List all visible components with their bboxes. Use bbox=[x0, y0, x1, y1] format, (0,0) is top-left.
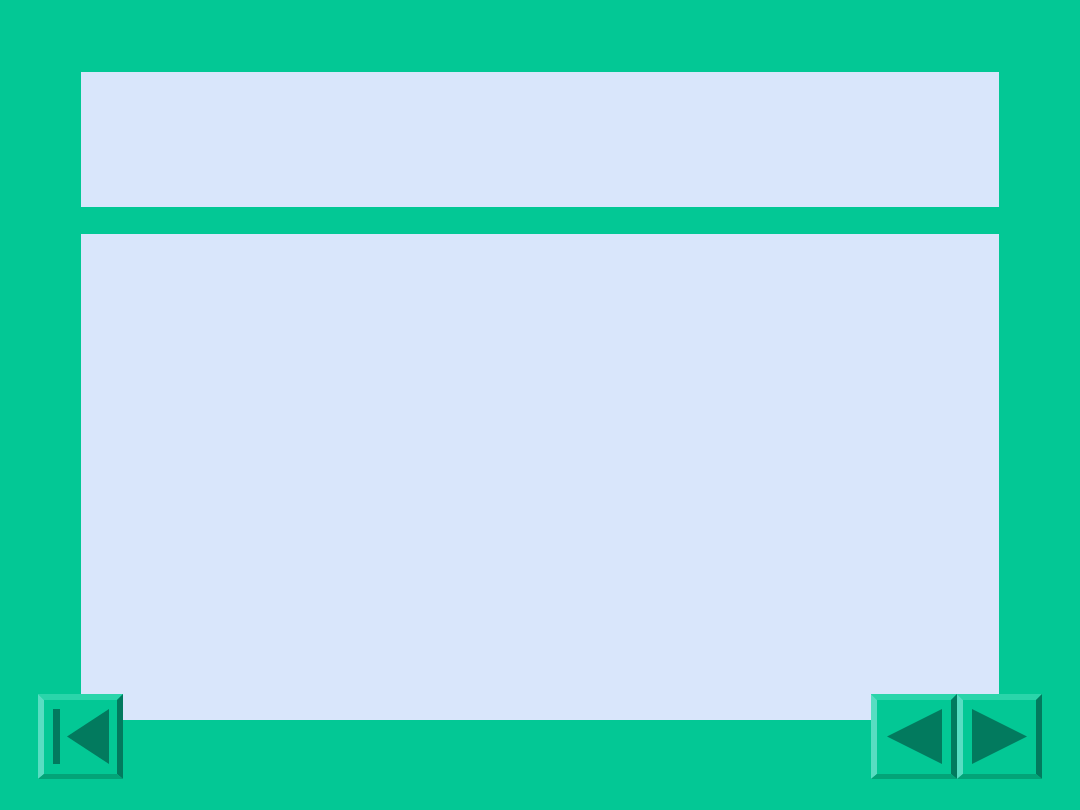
button[interactable]: Next slide bbox=[957, 694, 1042, 779]
button[interactable]: Previous slide bbox=[871, 694, 957, 779]
button[interactable]: First slide bbox=[38, 694, 123, 779]
button[interactable]: Slide body placeholder bbox=[81, 234, 999, 720]
